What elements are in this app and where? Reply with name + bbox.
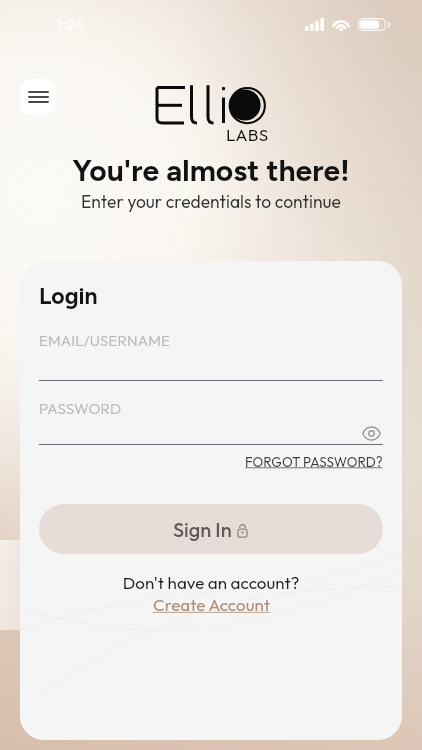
- staticText: FORGOT PASSWORD?: [245, 453, 383, 470]
- staticText: EMAIL/USERNAME: [39, 331, 170, 350]
- button[interactable]: Sign In: [39, 504, 383, 554]
- staticText: Login: [39, 282, 98, 310]
- staticText: LABS: [226, 124, 269, 145]
- staticText: 1:24: [56, 14, 85, 34]
- staticText: PASSWORD: [39, 399, 122, 418]
- staticText: Sign In: [173, 517, 232, 542]
- button[interactable]: Open menu: [20, 79, 56, 115]
- button[interactable]: FORGOT PASSWORD?: [245, 453, 383, 470]
- staticText: Don't have an account?: [39, 572, 383, 593]
- staticText: Enter your credentials to continue: [0, 190, 422, 212]
- button[interactable]: Show password: [359, 421, 383, 445]
- button[interactable]: Create Account: [153, 594, 270, 615]
- staticText: Create Account: [153, 594, 270, 615]
- staticText: You're almost there!: [0, 152, 422, 188]
